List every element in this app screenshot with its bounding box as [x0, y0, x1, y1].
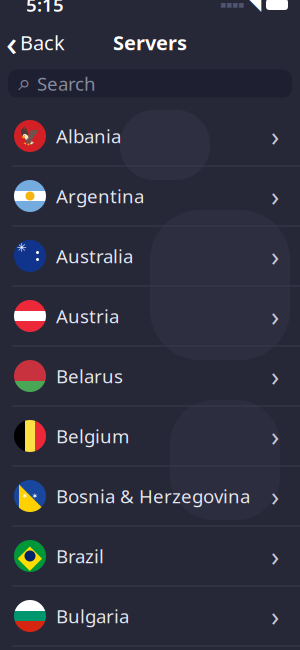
staticText: Bulgaria — [56, 604, 129, 628]
staticText: Search — [37, 71, 96, 96]
staticText: Albania — [56, 124, 121, 148]
staticText: Austria — [56, 304, 119, 328]
staticText: Brazil — [56, 544, 104, 568]
staticText: › — [271, 358, 279, 394]
staticText: Back — [20, 29, 65, 56]
staticText: ✳ — [16, 241, 26, 254]
staticText: 🦅 — [19, 126, 41, 146]
button[interactable]: Belgium — [0, 406, 300, 466]
button[interactable]: Belarus — [0, 346, 300, 406]
staticText: ✶ ✶ — [21, 491, 38, 501]
button[interactable]: ✳ — [0, 226, 300, 286]
staticText: › — [271, 538, 279, 574]
staticText: Argentina — [56, 184, 144, 208]
button[interactable]: Bulgaria — [0, 586, 300, 646]
staticText: › — [271, 178, 279, 214]
staticText: ‹ — [6, 19, 17, 65]
staticText: ▪▪▪▪ — [220, 0, 244, 10]
button[interactable]: Argentina — [0, 166, 300, 226]
staticText: › — [271, 598, 279, 634]
staticText: Belgium — [56, 424, 129, 448]
button[interactable]: ⌕ — [8, 69, 292, 97]
staticText: ⌕ — [18, 72, 31, 94]
button[interactable]: ◆ — [0, 526, 300, 586]
button[interactable]: ◣ — [0, 466, 300, 526]
button[interactable]: 🦅 — [0, 106, 300, 166]
staticText: › — [271, 298, 279, 334]
button[interactable]: ‹ — [0, 27, 65, 57]
button[interactable]: Austria — [0, 286, 300, 346]
staticText: 5:15 — [26, 0, 64, 17]
staticText: › — [271, 478, 279, 514]
staticText: ◆ — [17, 538, 42, 574]
staticText: › — [271, 418, 279, 454]
staticText: › — [271, 238, 279, 274]
staticText: › — [271, 118, 279, 154]
staticText: Bosnia & Herzegovina — [56, 484, 250, 508]
staticText: Servers — [113, 29, 187, 56]
staticText: Australia — [56, 244, 133, 268]
staticText: Belarus — [56, 364, 123, 388]
staticText: ◣ — [18, 473, 49, 519]
staticText: ◥ — [249, 0, 261, 14]
